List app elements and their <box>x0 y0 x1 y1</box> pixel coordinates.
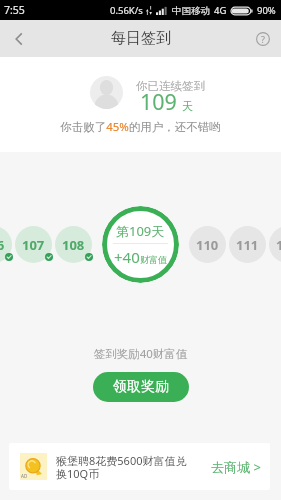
staticText: 106 <box>0 236 5 254</box>
staticText: 你已连续签到 <box>136 79 205 93</box>
button[interactable]: Help <box>244 20 281 57</box>
button[interactable]: 第109天 <box>102 206 179 283</box>
button[interactable]: 110 <box>189 226 226 263</box>
staticText: 你击败了45%的用户，还不错哟 <box>0 119 281 135</box>
button[interactable]: 领取奖励 <box>93 372 189 402</box>
staticText: 第109天 <box>116 222 165 240</box>
staticText: 猴堡聘8花费5600财富值兑换10Q币 <box>56 453 189 481</box>
button[interactable]: 112 <box>269 226 281 263</box>
staticText: +40 <box>114 247 140 267</box>
staticText: 90% <box>257 4 276 17</box>
staticText: 天 <box>182 99 193 113</box>
staticText: 财富值 <box>140 254 167 265</box>
button[interactable]: 107 <box>15 226 52 263</box>
staticText: 0.56K/s <box>110 4 143 17</box>
staticText: 签到奖励40财富值 <box>0 346 281 362</box>
button[interactable]: 去商城 > <box>211 458 261 476</box>
staticText: 4G <box>214 4 227 17</box>
button[interactable]: 111 <box>229 226 266 263</box>
staticText: AD <box>21 473 28 479</box>
staticText: 7:55 <box>4 3 25 17</box>
button[interactable]: 108 <box>55 226 92 263</box>
staticText: 110 <box>196 236 219 254</box>
staticText: ? <box>261 33 265 45</box>
staticText: 去商城 > <box>211 458 261 476</box>
staticText: 112 <box>276 236 281 254</box>
button[interactable]: AD <box>9 443 270 490</box>
staticText: 109 <box>140 87 177 116</box>
staticText: 中国移动 <box>172 5 210 17</box>
button[interactable]: 106 <box>0 226 12 263</box>
staticText: 每日签到 <box>111 29 171 48</box>
staticText: 领取奖励 <box>113 378 169 396</box>
staticText: 108 <box>62 236 85 254</box>
staticText: 111 <box>236 236 259 254</box>
staticText: 107 <box>22 236 45 254</box>
button[interactable]: Back <box>0 20 37 57</box>
